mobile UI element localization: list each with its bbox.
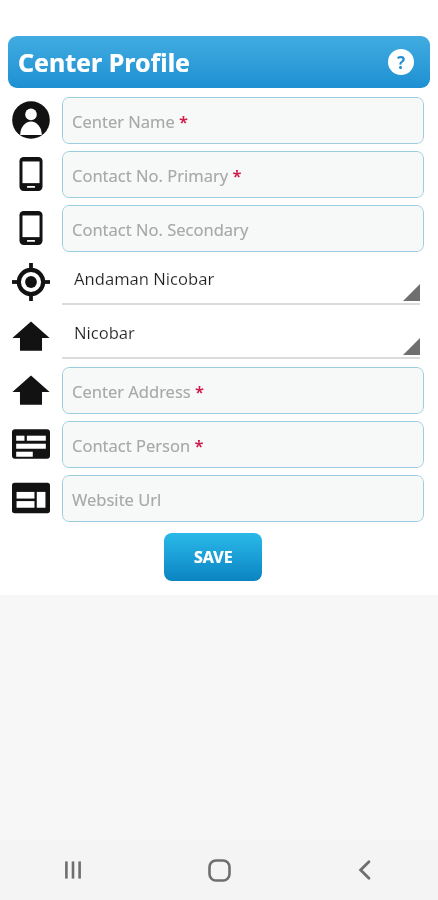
button[interactable]: Contact No. Primary *	[62, 151, 424, 198]
button[interactable]: Contact No. Secondary	[62, 205, 424, 252]
staticText: Center Address *	[72, 380, 204, 402]
staticText: Website Url	[72, 488, 162, 510]
button[interactable]: Home	[146, 840, 292, 900]
button[interactable]: Website Url	[62, 475, 424, 522]
staticText: Contact No. Primary *	[72, 164, 242, 186]
button[interactable]: Center Profile	[8, 36, 430, 88]
staticText: SAVE	[194, 546, 233, 568]
button[interactable]: Center Address *	[62, 367, 424, 414]
button[interactable]: SAVE	[164, 533, 262, 581]
staticText: Nicobar	[74, 321, 135, 343]
button[interactable]: Andaman Nicobar	[62, 259, 420, 306]
button[interactable]: Center Name *	[62, 97, 424, 144]
staticText: Contact Person *	[72, 434, 204, 456]
staticText: Center Profile	[18, 45, 386, 79]
staticText: ?	[397, 51, 406, 74]
staticText: Contact No. Secondary	[72, 218, 249, 240]
button[interactable]: Recents	[0, 840, 146, 900]
button[interactable]: Back	[292, 840, 438, 900]
button[interactable]: Nicobar	[62, 313, 420, 360]
staticText: Center Name *	[72, 110, 189, 132]
staticText: Andaman Nicobar	[74, 267, 215, 289]
button[interactable]: Help	[386, 47, 416, 77]
button[interactable]: Contact Person *	[62, 421, 424, 468]
